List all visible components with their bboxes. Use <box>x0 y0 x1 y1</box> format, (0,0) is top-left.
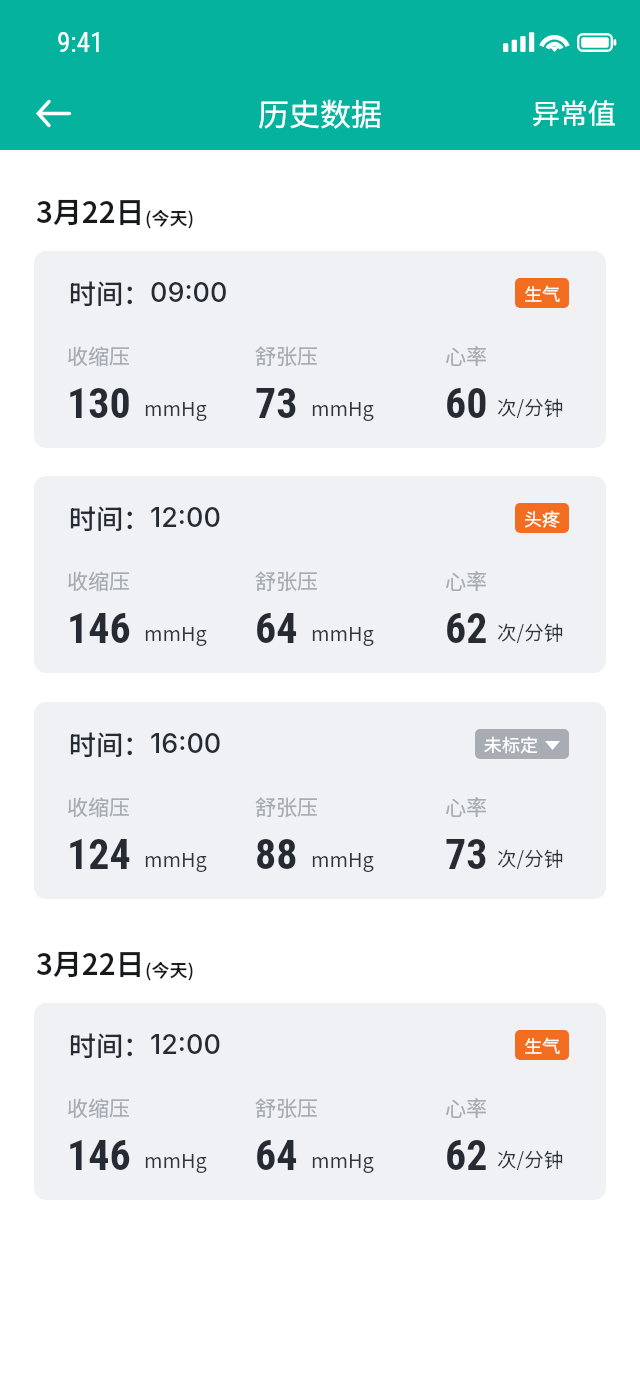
staticText: 心率 <box>445 565 487 595</box>
staticText: 收缩压 <box>67 791 130 821</box>
staticText: 88 <box>255 830 298 879</box>
staticText: mmHg <box>144 618 207 647</box>
button[interactable]: 生气 <box>515 1030 569 1060</box>
staticText: 历史数据 <box>258 90 382 135</box>
staticText: (今天) <box>145 956 195 982</box>
staticText: 62 <box>445 604 488 653</box>
staticText: 次/分钟 <box>497 392 564 420</box>
staticText: 73 <box>445 830 488 879</box>
staticText: 64 <box>255 604 298 653</box>
button[interactable]: 时间： <box>34 476 606 673</box>
staticText: 舒张压 <box>255 340 318 370</box>
staticText: 舒张压 <box>255 565 318 595</box>
staticText: mmHg <box>311 393 374 422</box>
staticText: 时间： <box>69 724 150 763</box>
staticText: 次/分钟 <box>497 617 564 645</box>
staticText: 130 <box>67 379 131 428</box>
staticText: mmHg <box>311 1145 374 1174</box>
staticText: 收缩压 <box>67 1092 130 1122</box>
staticText: 未标定 <box>484 731 538 757</box>
staticText: 3月22日 <box>36 189 145 231</box>
staticText: 舒张压 <box>255 791 318 821</box>
staticText: 124 <box>67 830 131 879</box>
staticText: (今天) <box>145 204 195 230</box>
staticText: 心率 <box>445 1092 487 1122</box>
staticText: 3月22日 <box>36 941 145 983</box>
staticText: 时间： <box>69 1025 150 1064</box>
staticText: 146 <box>67 604 131 653</box>
staticText: 头疼 <box>524 505 560 531</box>
staticText: 生气 <box>524 1032 560 1058</box>
button[interactable]: 时间： <box>34 251 606 448</box>
staticText: 9:41 <box>57 27 104 59</box>
staticText: mmHg <box>311 844 374 873</box>
staticText: mmHg <box>144 844 207 873</box>
staticText: 时间： <box>69 498 150 537</box>
staticText: 次/分钟 <box>497 1144 564 1172</box>
staticText: 62 <box>445 1131 488 1180</box>
button[interactable]: 生气 <box>515 278 569 308</box>
staticText: 64 <box>255 1131 298 1180</box>
staticText: 异常值 <box>532 92 617 133</box>
staticText: 时间： <box>69 273 150 312</box>
button[interactable]: 时间： <box>34 702 606 899</box>
staticText: mmHg <box>144 1145 207 1174</box>
button[interactable]: 异常值 <box>512 78 640 147</box>
staticText: 次/分钟 <box>497 843 564 871</box>
staticText: 心率 <box>445 791 487 821</box>
staticText: 12:00 <box>150 1028 221 1061</box>
button[interactable]: Back <box>17 77 89 149</box>
staticText: 生气 <box>524 280 560 306</box>
staticText: 收缩压 <box>67 340 130 370</box>
button[interactable]: 未标定 <box>475 729 569 759</box>
staticText: 心率 <box>445 340 487 370</box>
button[interactable]: 头疼 <box>515 503 569 533</box>
staticText: 60 <box>445 379 488 428</box>
staticText: mmHg <box>311 618 374 647</box>
staticText: mmHg <box>144 393 207 422</box>
staticText: 146 <box>67 1131 131 1180</box>
button[interactable]: 时间： <box>34 1003 606 1200</box>
staticText: 16:00 <box>150 727 222 760</box>
staticText: 12:00 <box>150 501 221 534</box>
staticText: 收缩压 <box>67 565 130 595</box>
staticText: 舒张压 <box>255 1092 318 1122</box>
staticText: 73 <box>255 379 298 428</box>
staticText: 09:00 <box>150 276 228 309</box>
